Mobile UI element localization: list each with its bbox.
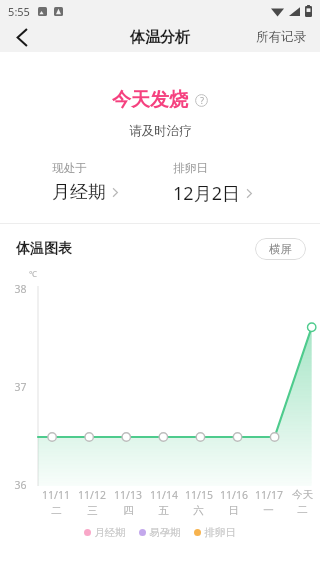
button[interactable]: Back	[0, 22, 44, 52]
staticText: 今天	[292, 488, 313, 501]
staticText: 二	[51, 504, 62, 517]
staticText: 5:55	[8, 4, 30, 19]
button[interactable]: Help	[195, 94, 208, 107]
staticText: ℃	[29, 268, 37, 279]
staticText: ?	[200, 95, 204, 107]
staticText: 三	[87, 504, 98, 517]
staticText: 四	[123, 504, 134, 517]
button[interactable]: 横屏	[255, 238, 306, 260]
button[interactable]: 月经期	[52, 181, 118, 204]
staticText: 11/17	[255, 488, 283, 502]
staticText: 五	[158, 504, 169, 517]
staticText: 11/12	[78, 488, 106, 502]
staticText: 11/14	[150, 488, 178, 502]
staticText: 今天发烧	[112, 88, 188, 112]
staticText: 排卵日	[173, 161, 208, 175]
staticText: 36	[14, 478, 27, 492]
staticText: 11/16	[220, 488, 248, 502]
staticText: 二	[297, 503, 308, 516]
staticText: 37	[14, 380, 27, 394]
staticText: 11/11	[42, 488, 70, 502]
staticText: 月经期	[94, 526, 126, 539]
staticText: 11/15	[185, 488, 213, 502]
button[interactable]: 所有记录	[256, 22, 306, 52]
staticText: 请及时治疗	[129, 123, 192, 139]
staticText: 体温图表	[16, 240, 72, 258]
staticText: 所有记录	[256, 29, 306, 45]
staticText: 易孕期	[149, 526, 181, 539]
staticText: 体温分析	[130, 28, 190, 47]
staticText: 38	[14, 282, 27, 296]
staticText: 现处于	[52, 161, 87, 175]
button[interactable]: 12月2日	[173, 181, 252, 206]
staticText: 一	[263, 504, 274, 517]
staticText: 日	[228, 504, 239, 517]
staticText: 12月2日	[173, 181, 240, 206]
staticText: 11/13	[114, 488, 142, 502]
staticText: 横屏	[269, 242, 292, 256]
staticText: 排卵日	[204, 526, 236, 539]
staticText: 六	[193, 504, 204, 517]
staticText: 月经期	[52, 181, 106, 204]
